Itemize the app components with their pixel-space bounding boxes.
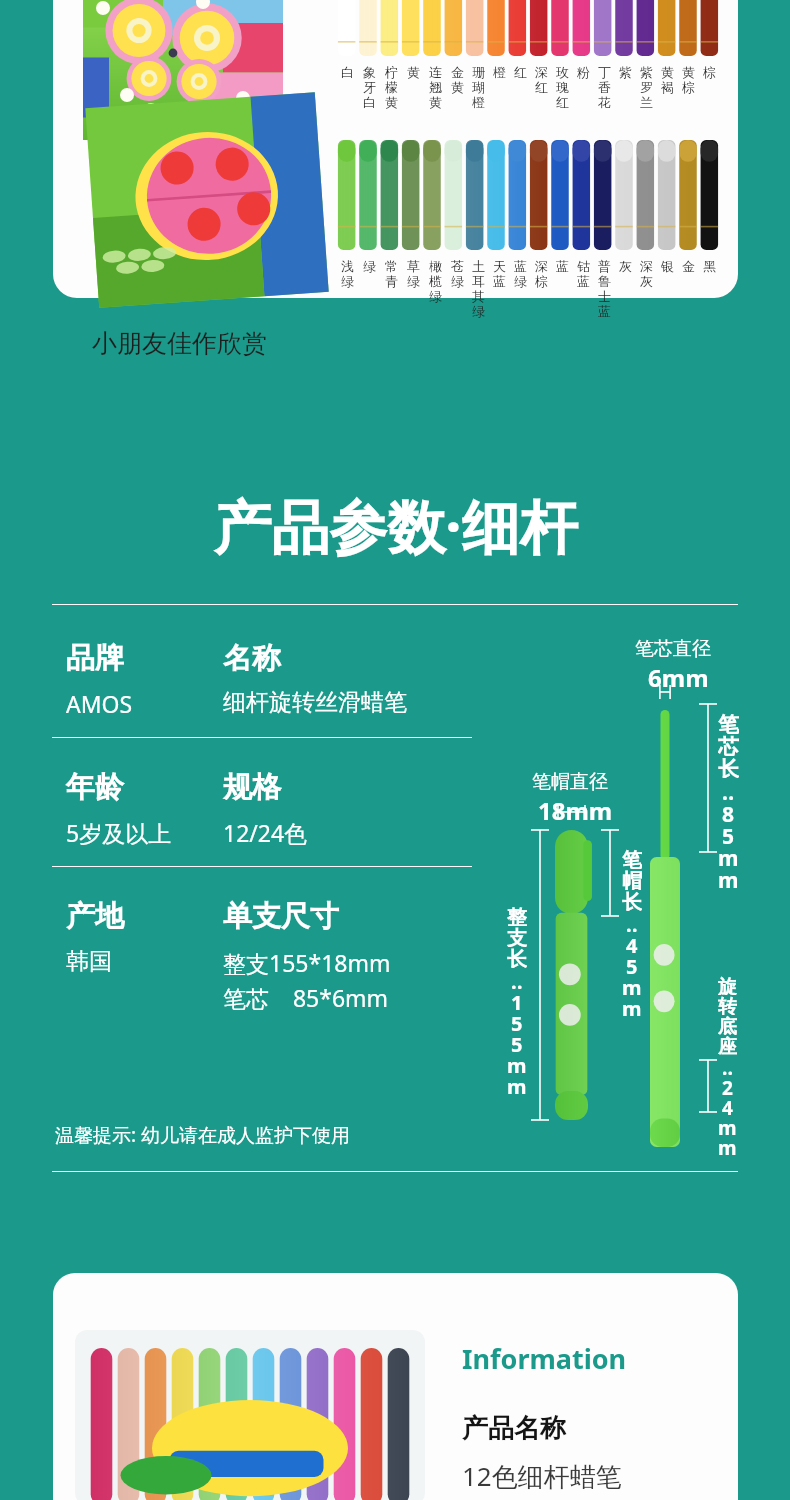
staticText: 绿: [472, 303, 485, 318]
staticText: 普: [598, 258, 611, 273]
staticText: 旋: [718, 975, 737, 995]
staticText: 香: [598, 79, 611, 94]
staticText: 细杆旋转丝滑蜡笔: [223, 688, 407, 717]
staticText: ‥: [722, 778, 735, 800]
staticText: 粉: [577, 64, 590, 79]
staticText: 紫: [619, 64, 632, 79]
button[interactable]: [53, 0, 738, 298]
staticText: 1: [511, 989, 523, 1010]
staticText: 黄: [407, 64, 420, 79]
staticText: 小朋友佳作欣赏: [92, 328, 267, 359]
staticText: 绿: [363, 258, 376, 273]
staticText: 笔芯直径: [635, 637, 711, 661]
staticText: 红: [556, 94, 569, 109]
staticText: 橙: [493, 64, 506, 79]
staticText: 蓝: [598, 303, 611, 318]
staticText: 浅: [341, 258, 354, 273]
staticText: 蓝: [577, 273, 590, 288]
staticText: 4: [626, 932, 638, 953]
staticText: 灰: [640, 273, 653, 288]
staticText: m: [622, 995, 642, 1016]
staticText: 韩国: [66, 947, 112, 976]
staticText: 5: [626, 953, 638, 974]
staticText: 8: [722, 800, 735, 822]
staticText: 6mm: [648, 661, 709, 694]
staticText: 瑚: [472, 79, 485, 94]
staticText: 耳: [472, 273, 485, 288]
staticText: 檬: [385, 79, 398, 94]
staticText: 鲁: [598, 273, 611, 288]
staticText: 金: [682, 258, 695, 273]
staticText: 其: [472, 288, 485, 303]
staticText: 品牌: [66, 640, 124, 677]
staticText: 黄: [429, 94, 442, 109]
staticText: 12色细杆蜡笔: [462, 1458, 622, 1494]
staticText: 兰: [640, 94, 653, 109]
staticText: 帽: [622, 869, 642, 890]
staticText: 转: [718, 995, 737, 1015]
staticText: 玫: [556, 64, 569, 79]
staticText: m: [718, 1135, 737, 1155]
staticText: 笔芯 85*6mm: [223, 982, 389, 1013]
staticText: 5: [511, 1010, 523, 1031]
staticText: 苍: [451, 258, 464, 273]
staticText: 柠: [385, 64, 398, 79]
staticText: 白: [341, 64, 354, 79]
staticText: 草: [407, 258, 420, 273]
staticText: 士: [598, 288, 611, 303]
staticText: 笔帽直径: [532, 770, 608, 794]
staticText: 黄: [661, 64, 674, 79]
staticText: 黄: [682, 64, 695, 79]
staticText: 深: [640, 258, 653, 273]
staticText: 橙: [472, 94, 485, 109]
staticText: 绿: [451, 273, 464, 288]
staticText: 绿: [429, 288, 442, 303]
staticText: 笔: [718, 712, 739, 734]
staticText: 瑰: [556, 79, 569, 94]
staticText: 深: [535, 64, 548, 79]
staticText: 灰: [619, 258, 632, 273]
staticText: 青: [385, 273, 398, 288]
staticText: 红: [535, 79, 548, 94]
staticText: 连: [429, 64, 442, 79]
staticText: 金: [451, 64, 464, 79]
staticText: 牙: [363, 79, 376, 94]
staticText: 常: [385, 258, 398, 273]
staticText: 规格: [223, 769, 281, 806]
staticText: m: [718, 844, 739, 866]
staticText: 年龄: [66, 769, 124, 806]
staticText: 榄: [429, 273, 442, 288]
staticText: 黑: [703, 258, 716, 273]
staticText: 土: [472, 258, 485, 273]
staticText: 花: [598, 94, 611, 109]
staticText: 温馨提示: 幼儿请在成人监护下使用: [55, 1122, 351, 1148]
staticText: 产品参数·细杆: [213, 486, 578, 565]
staticText: 钴: [577, 258, 590, 273]
staticText: 长: [718, 756, 739, 778]
staticText: 绿: [341, 273, 354, 288]
staticText: 黄: [385, 94, 398, 109]
staticText: 棕: [535, 273, 548, 288]
staticText: 18mm: [538, 794, 613, 827]
staticText: 蓝: [493, 273, 506, 288]
staticText: 天: [493, 258, 506, 273]
button[interactable]: [53, 1273, 738, 1500]
staticText: 5岁及以上: [66, 817, 172, 848]
staticText: 绿: [407, 273, 420, 288]
staticText: ‥: [722, 1055, 733, 1075]
staticText: 橄: [429, 258, 442, 273]
staticText: 丁: [598, 64, 611, 79]
staticText: 红: [514, 64, 527, 79]
staticText: 长: [507, 947, 527, 968]
staticText: 蓝: [556, 258, 569, 273]
staticText: 长: [622, 890, 642, 911]
staticText: 5: [511, 1031, 523, 1052]
staticText: 笔: [622, 848, 642, 869]
staticText: 棕: [703, 64, 716, 79]
staticText: 产地: [66, 898, 124, 935]
staticText: AMOS: [66, 688, 133, 719]
staticText: 深: [535, 258, 548, 273]
staticText: 底: [718, 1015, 737, 1035]
staticText: 名称: [223, 640, 281, 677]
staticText: 蓝: [514, 258, 527, 273]
